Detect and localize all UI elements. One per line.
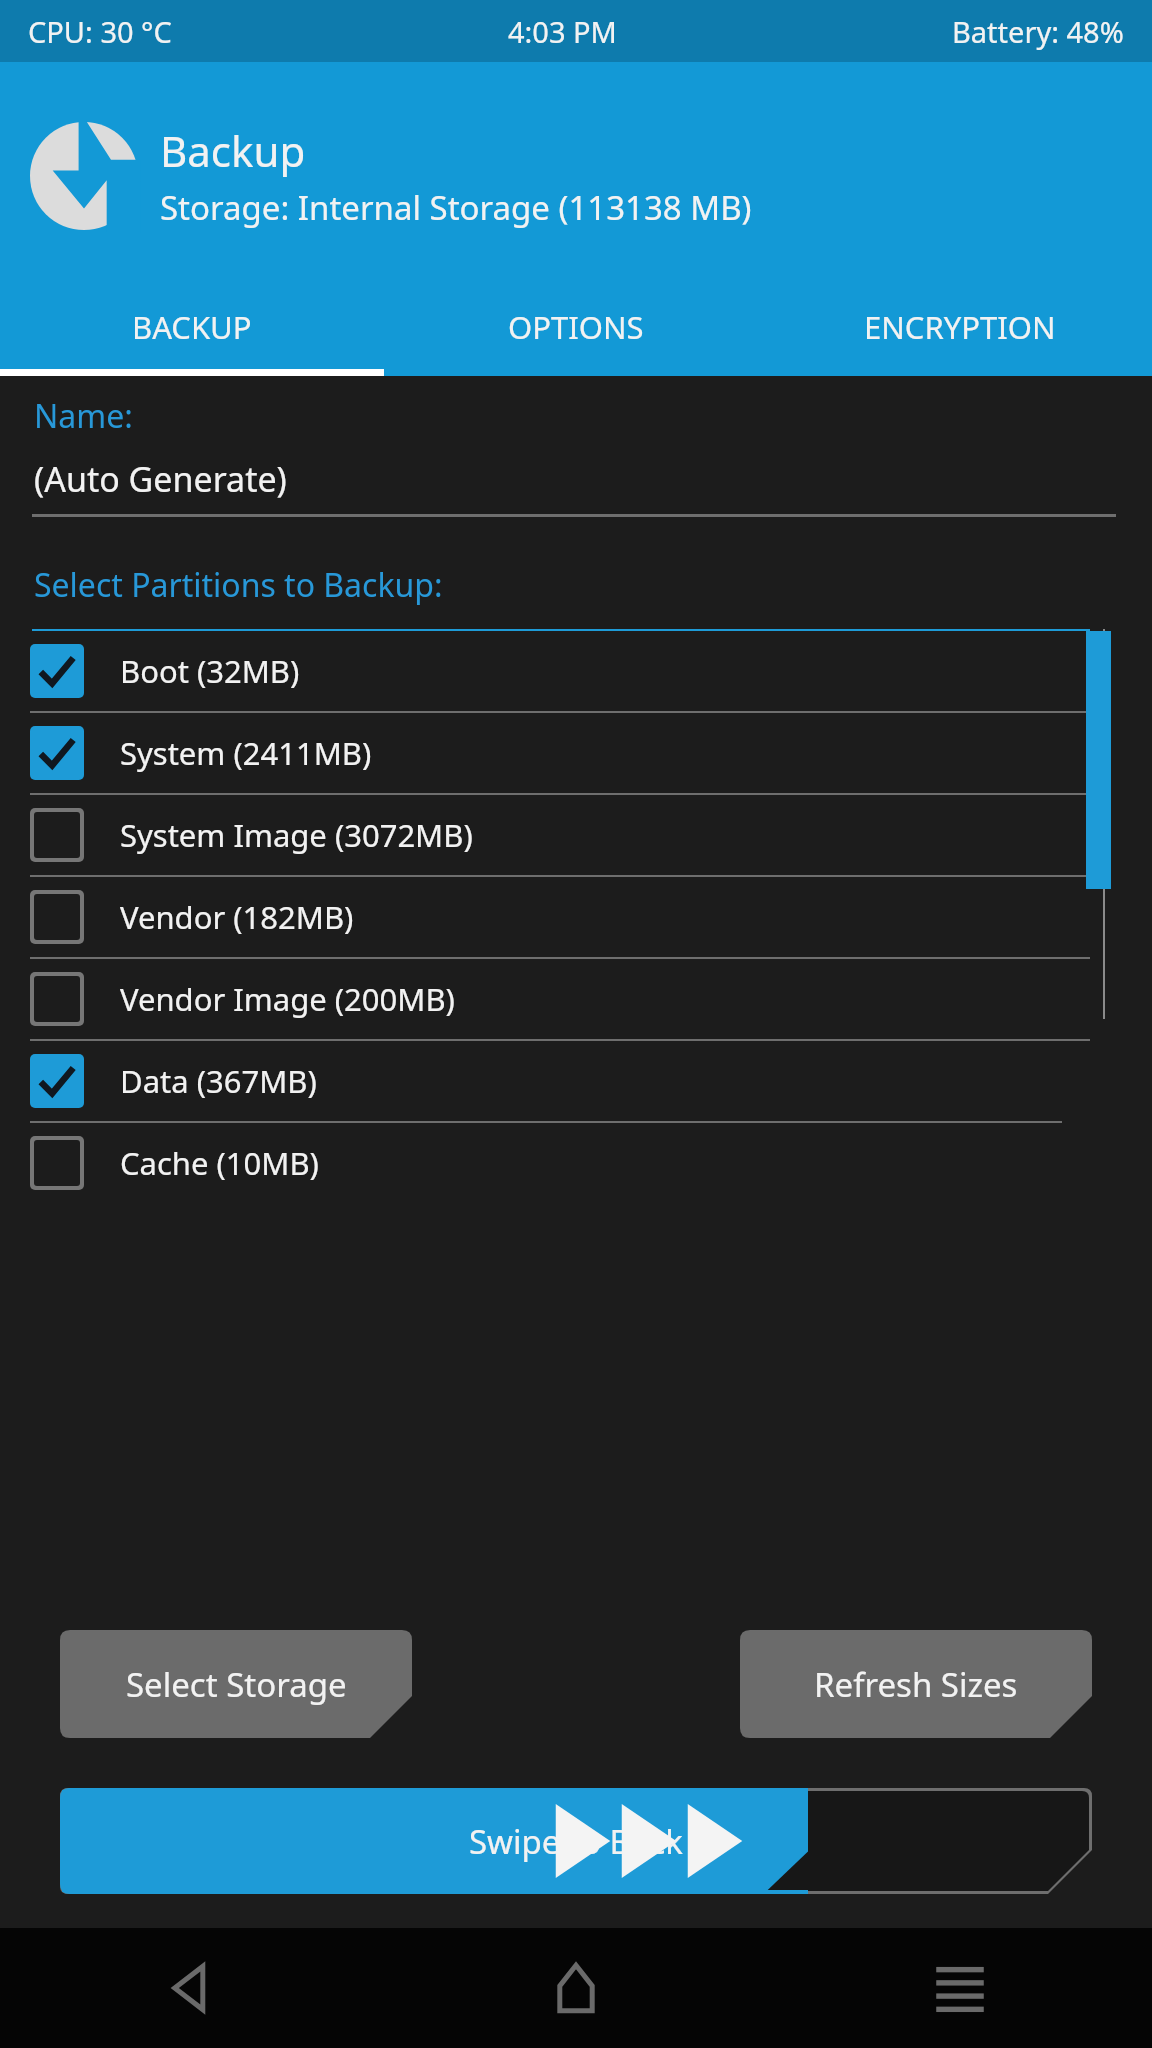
staticText: Boot (32MB): [120, 650, 300, 692]
staticText: Battery: 48%: [952, 12, 1124, 51]
staticText: 4:03 PM: [508, 12, 617, 51]
button[interactable]: Refresh Sizes: [740, 1630, 1092, 1738]
button[interactable]: ENCRYPTION: [768, 290, 1152, 376]
staticText: Vendor Image (200MB): [120, 978, 455, 1020]
staticText: CPU: 30 °C: [28, 12, 172, 51]
staticText: Backup: [160, 122, 306, 179]
staticText: Refresh Sizes: [814, 1662, 1018, 1707]
button[interactable]: Home: [384, 1928, 768, 2048]
button[interactable]: Menu: [768, 1928, 1152, 2048]
staticText: Name:: [34, 394, 133, 438]
button[interactable]: Boot (32MB): [0, 631, 1152, 711]
staticText: ENCRYPTION: [864, 306, 1056, 348]
staticText: System (2411MB): [120, 732, 372, 774]
staticText: Cache (10MB): [120, 1142, 319, 1184]
staticText: Vendor (182MB): [120, 896, 354, 938]
button[interactable]: System Image (3072MB): [0, 795, 1152, 875]
staticText: Swipe to Back: [469, 1819, 683, 1864]
button[interactable]: Cache (10MB): [0, 1123, 1152, 1203]
button[interactable]: BACKUP: [0, 290, 384, 376]
button[interactable]: Data (367MB): [0, 1041, 1152, 1121]
staticText: Select Partitions to Backup:: [34, 563, 443, 607]
button[interactable]: Vendor (182MB): [0, 877, 1152, 957]
staticText: BACKUP: [132, 306, 252, 348]
button[interactable]: OPTIONS: [384, 290, 768, 376]
staticText: OPTIONS: [508, 306, 644, 348]
button[interactable]: Back: [0, 1928, 384, 2048]
staticText: Storage: Internal Storage (113138 MB): [160, 185, 752, 230]
staticText: System Image (3072MB): [120, 814, 473, 856]
staticText: Select Storage: [126, 1662, 347, 1707]
button[interactable]: System (2411MB): [0, 713, 1152, 793]
staticText: (Auto Generate): [34, 456, 287, 502]
button[interactable]: Swipe to Back: [60, 1788, 1092, 1894]
staticText: Data (367MB): [120, 1060, 317, 1102]
button[interactable]: Vendor Image (200MB): [0, 959, 1152, 1039]
button[interactable]: Select Storage: [60, 1630, 412, 1738]
